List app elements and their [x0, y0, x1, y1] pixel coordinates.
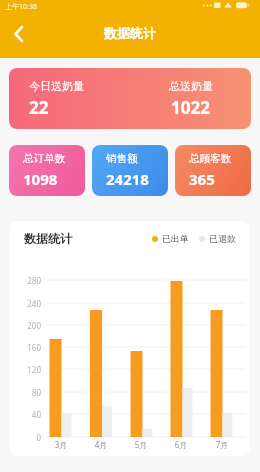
staticText: 1022 [171, 96, 210, 119]
staticText: 7月 [207, 439, 237, 450]
staticText: 200 [14, 320, 41, 331]
staticText: 22 [29, 96, 49, 119]
staticText: 销售额 [106, 152, 138, 165]
staticText: 今日送奶量 [29, 79, 84, 93]
staticText: 1098 [23, 169, 58, 189]
staticText: 总送奶量 [169, 79, 213, 93]
staticText: 总顾客数 [189, 152, 231, 165]
staticText: 40 [14, 409, 41, 420]
staticText: 80 [14, 387, 41, 398]
staticText: 已出单 [162, 233, 189, 244]
staticText: 数据统计 [24, 231, 72, 246]
staticText: 280 [14, 275, 41, 286]
staticText: 240 [14, 298, 41, 309]
staticText: 总订单数 [23, 152, 65, 165]
button[interactable] [5, 20, 33, 48]
button[interactable]: 今日送奶量 [9, 68, 251, 129]
staticText: 365 [189, 169, 215, 189]
button[interactable]: 销售额 [92, 145, 168, 196]
staticText: 24218 [106, 169, 149, 189]
button[interactable]: 总顾客数 [175, 145, 251, 196]
staticText: 3月 [46, 439, 76, 450]
staticText: 5月 [126, 439, 156, 450]
staticText: 4月 [86, 439, 116, 450]
staticText: 已退款 [209, 233, 236, 244]
staticText: 160 [14, 342, 41, 353]
button[interactable]: 总订单数 [9, 145, 85, 196]
staticText: 0 [14, 432, 41, 443]
staticText: 上午10:38 [5, 2, 37, 12]
staticText: 120 [14, 364, 41, 375]
staticText: 6月 [166, 439, 196, 450]
staticText: 数据统计 [104, 25, 156, 41]
